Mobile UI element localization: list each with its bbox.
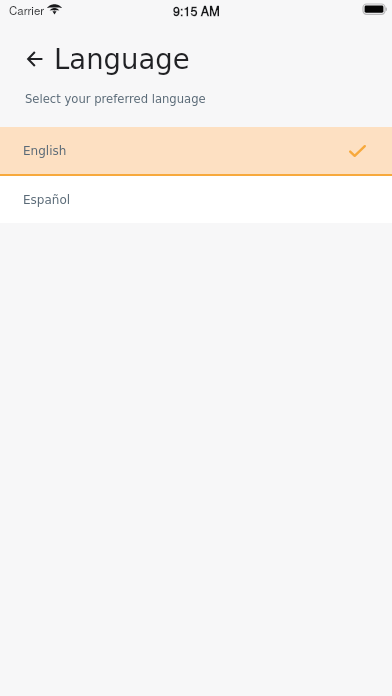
- button[interactable]: Español: [0, 176, 392, 223]
- staticText: Language: [54, 43, 190, 75]
- staticText: Select your preferred language: [25, 92, 206, 106]
- staticText: Español: [23, 193, 71, 207]
- staticText: Carrier: [9, 2, 45, 18]
- staticText: English: [23, 144, 67, 158]
- staticText: 9:15 AM: [173, 2, 220, 20]
- button[interactable]: English: [0, 127, 392, 174]
- button[interactable]: Back: [19, 43, 50, 74]
